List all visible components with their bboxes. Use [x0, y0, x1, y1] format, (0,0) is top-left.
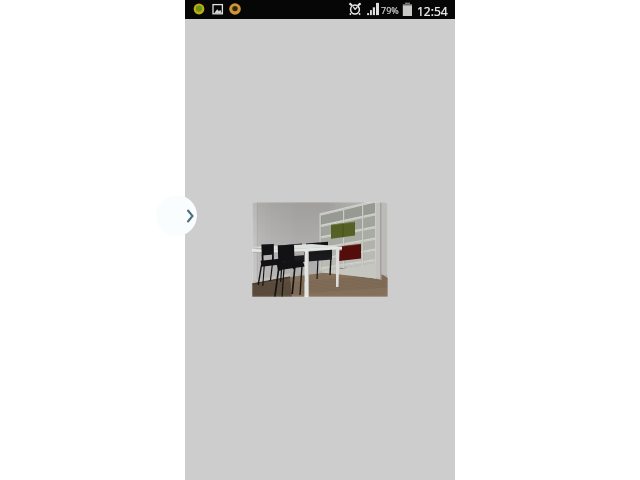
staticText: 79%	[381, 4, 399, 16]
staticText: 12:54	[417, 3, 448, 19]
button[interactable]: Next photo	[156, 195, 197, 236]
